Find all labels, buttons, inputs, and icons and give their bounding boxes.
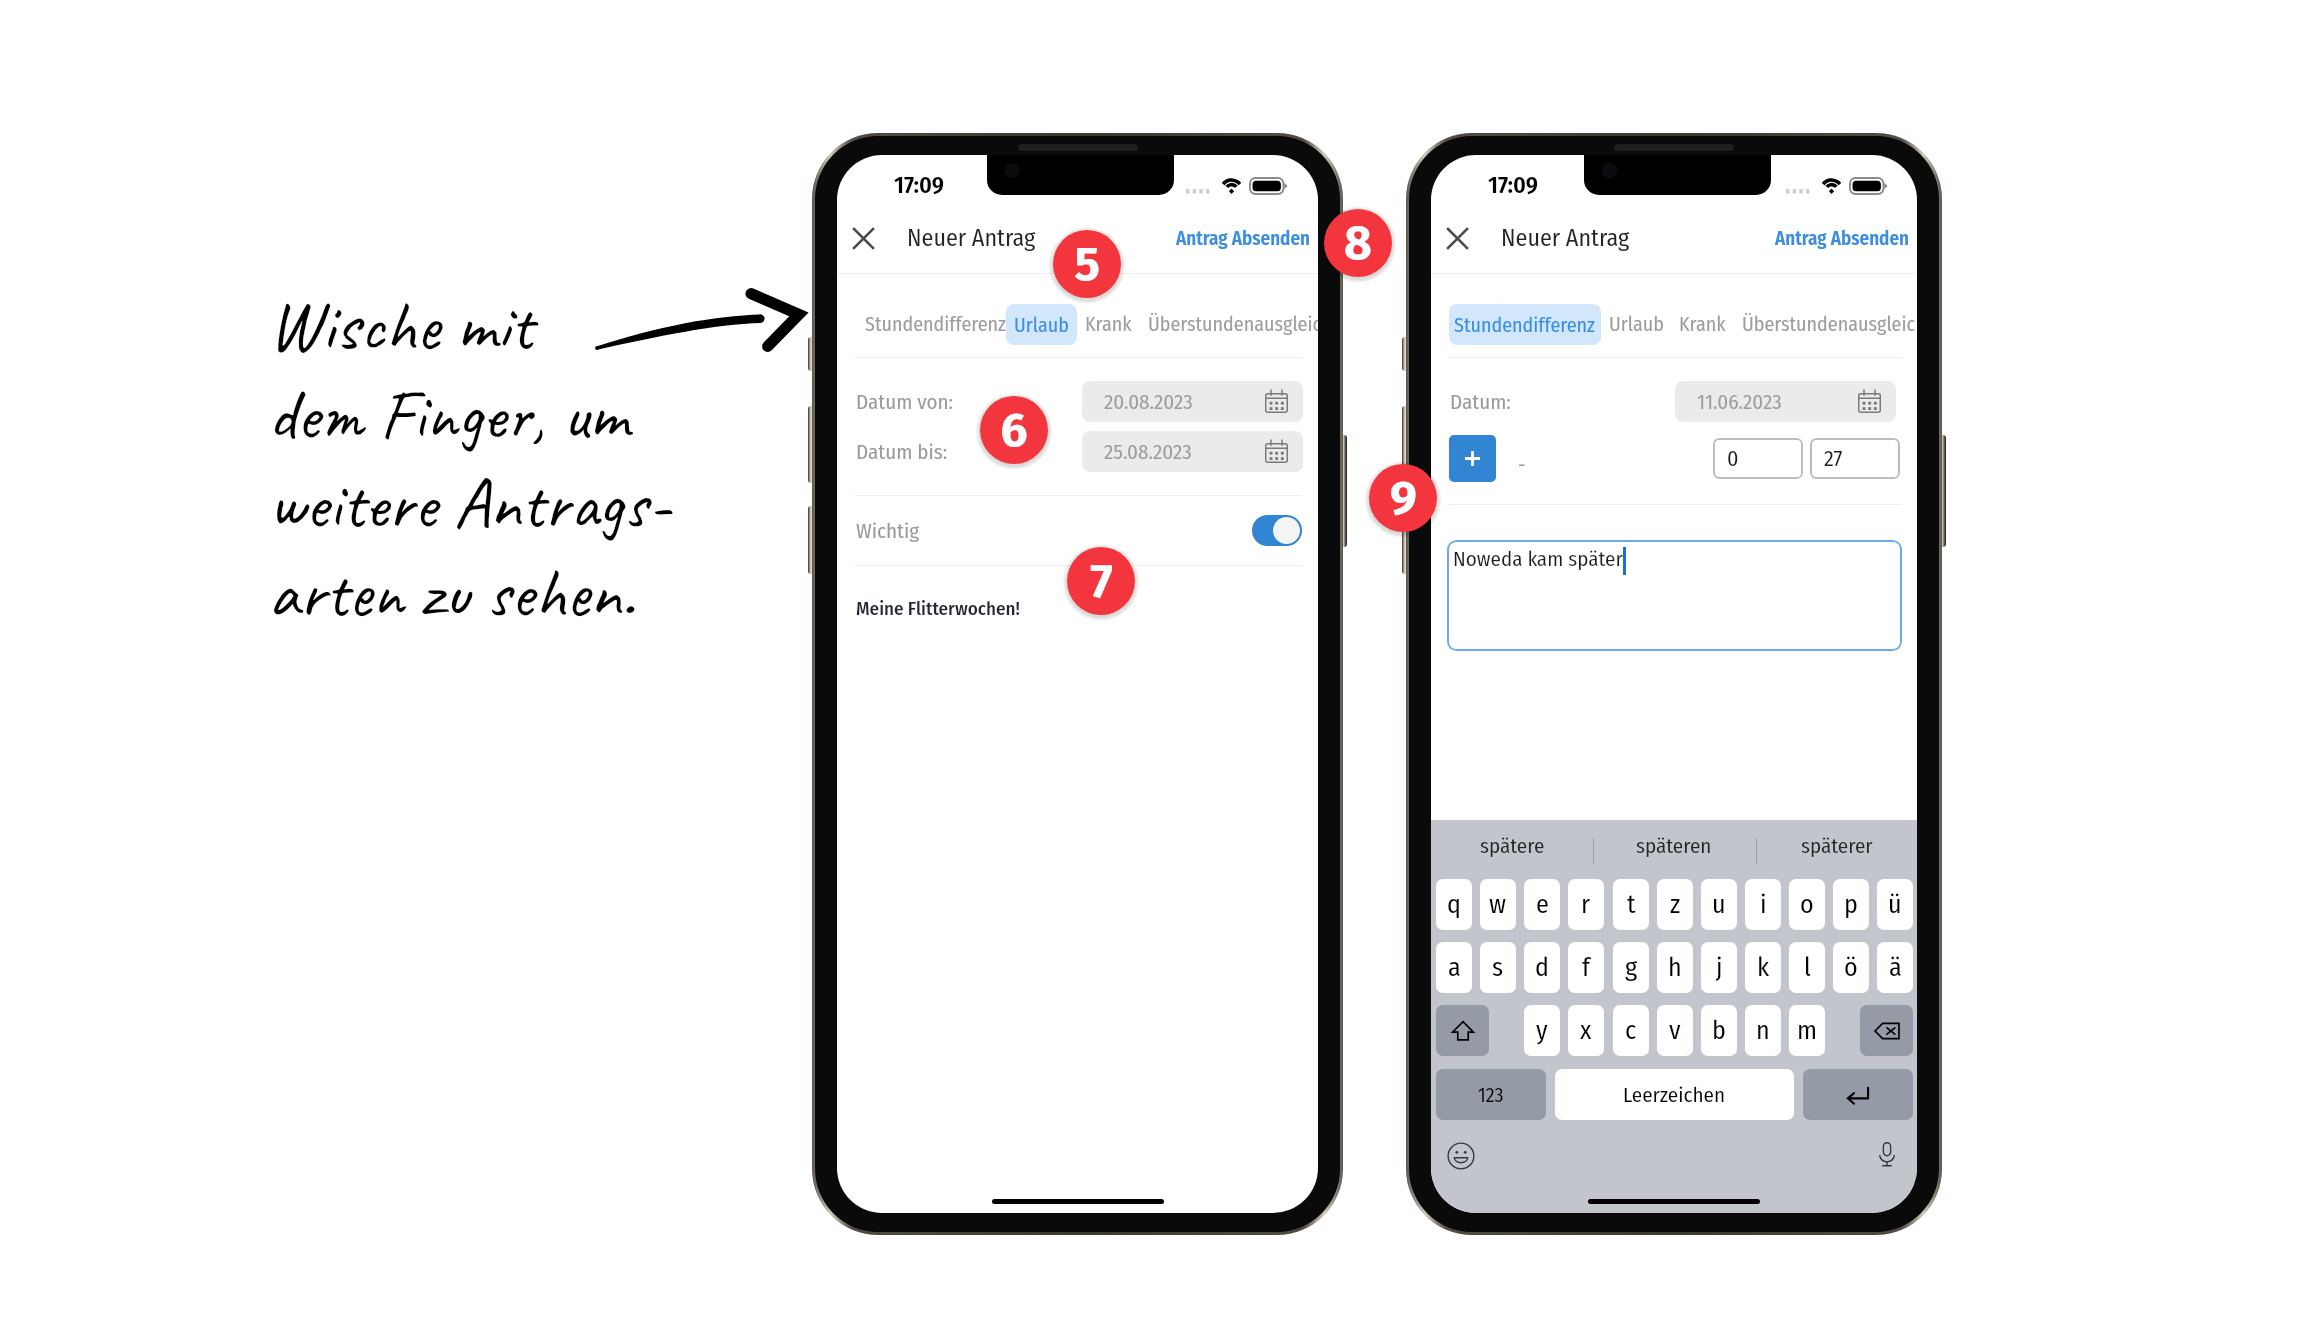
button[interactable]: Schritt 6 (980, 396, 1048, 464)
button[interactable]: y (1524, 1005, 1560, 1056)
button[interactable]: v (1657, 1005, 1693, 1056)
button[interactable]: b (1701, 1005, 1737, 1056)
staticText: 25.08.2023 (1104, 439, 1192, 464)
staticText: x (1580, 1015, 1592, 1046)
button[interactable]: f (1568, 942, 1604, 993)
staticText: Leerzeichen (1623, 1082, 1726, 1107)
button[interactable]: Noweda kam später (1447, 540, 1902, 651)
staticText: o (1800, 889, 1814, 920)
staticText: f (1582, 952, 1590, 983)
button[interactable]: x (1568, 1005, 1604, 1056)
staticText: Wische mit (268, 281, 533, 370)
staticText: Stundendifferenz (865, 312, 1007, 336)
button[interactable]: Löschen (1860, 1005, 1913, 1056)
staticText: Wichtig (856, 518, 920, 543)
button[interactable]: Wichtig umschalten (1252, 515, 1302, 546)
button[interactable]: Urlaub (1609, 301, 1664, 347)
button[interactable]: Stundendifferenz (1449, 304, 1601, 345)
staticText: d (1535, 952, 1549, 983)
staticText: h (1668, 952, 1682, 983)
button[interactable]: Eingabe (1803, 1069, 1913, 1120)
button[interactable]: Urlaub (1006, 304, 1077, 345)
button[interactable]: q (1436, 879, 1472, 930)
button[interactable]: Schließen (837, 211, 890, 265)
button[interactable]: Schritt 7 (1067, 547, 1135, 615)
button[interactable]: i (1745, 879, 1781, 930)
staticText: k (1757, 952, 1770, 983)
staticText: Überstundenausgleic (1148, 312, 1318, 336)
button[interactable]: t (1613, 879, 1649, 930)
button[interactable]: h (1657, 942, 1693, 993)
staticText: Neuer Antrag (907, 224, 1036, 253)
staticText: u (1712, 889, 1726, 920)
button[interactable]: Schritt 5 (1053, 230, 1121, 298)
button[interactable]: Emoji (1447, 1142, 1475, 1170)
staticText: Datum von: (856, 389, 954, 414)
staticText: Datum: (1450, 389, 1511, 414)
button[interactable]: ü (1877, 879, 1913, 930)
button[interactable]: Schließen (1431, 211, 1484, 265)
staticText: Datum bis: (856, 439, 948, 464)
button[interactable]: Hinzufügen (1449, 435, 1496, 482)
staticText: 17:09 (894, 171, 944, 200)
button[interactable]: 25.08.2023 (1082, 431, 1303, 472)
button[interactable]: ö (1833, 942, 1869, 993)
button[interactable]: u (1701, 879, 1737, 930)
staticText: weitere Antrags- (268, 459, 671, 548)
staticText: j (1716, 952, 1723, 983)
button[interactable]: spätere (1431, 820, 1593, 870)
button[interactable]: Krank (1085, 301, 1132, 347)
button[interactable]: j (1701, 942, 1737, 993)
button[interactable]: w (1480, 879, 1516, 930)
button[interactable]: Leerzeichen (1555, 1069, 1794, 1120)
button[interactable]: späteren (1593, 820, 1755, 870)
button[interactable]: 123 (1436, 1069, 1546, 1120)
button[interactable]: d (1524, 942, 1560, 993)
staticText: i (1760, 889, 1767, 920)
button[interactable]: 0 (1713, 438, 1803, 479)
button[interactable]: a (1436, 942, 1472, 993)
button[interactable]: c (1613, 1005, 1649, 1056)
button[interactable]: p (1833, 879, 1869, 930)
staticText: Antrag Absenden (1775, 227, 1909, 250)
button[interactable]: r (1568, 879, 1604, 930)
button[interactable]: Schritt 9 (1369, 464, 1437, 532)
staticText: 11.06.2023 (1697, 389, 1782, 414)
button[interactable]: l (1789, 942, 1825, 993)
staticText: 17:09 (1488, 171, 1538, 200)
button[interactable]: e (1524, 879, 1560, 930)
staticText: z (1670, 889, 1681, 920)
button[interactable]: 27 (1810, 438, 1900, 479)
staticText: 27 (1824, 445, 1843, 471)
staticText: v (1669, 1015, 1681, 1046)
button[interactable]: n (1745, 1005, 1781, 1056)
staticText: p (1844, 889, 1858, 920)
button[interactable]: s (1480, 942, 1516, 993)
staticText: 7 (1090, 552, 1113, 610)
button[interactable]: g (1613, 942, 1649, 993)
button[interactable]: Schritt 8 (1324, 209, 1392, 277)
button[interactable]: Krank (1679, 301, 1726, 347)
button[interactable]: 20.08.2023 (1082, 381, 1303, 422)
button[interactable]: z (1657, 879, 1693, 930)
button[interactable]: Überstundenausgleic (1148, 301, 1318, 347)
button[interactable]: Überstundenausgleic (1742, 301, 1916, 347)
staticText: 123 (1478, 1083, 1504, 1107)
button[interactable]: Antrag Absenden (1171, 222, 1315, 255)
button[interactable]: Diktieren (1873, 1140, 1901, 1168)
staticText: y (1536, 1015, 1548, 1046)
staticText: arten zu sehen. (268, 548, 635, 637)
staticText: Stundendifferenz (1454, 313, 1596, 337)
staticText: s (1492, 952, 1504, 983)
button[interactable]: m (1789, 1005, 1825, 1056)
button[interactable]: k (1745, 942, 1781, 993)
button[interactable]: ä (1877, 942, 1913, 993)
button[interactable]: Stundendifferenz (865, 301, 1007, 347)
staticText: ö (1844, 952, 1858, 983)
staticText: 0 (1727, 445, 1739, 471)
button[interactable]: Antrag Absenden (1770, 222, 1914, 255)
button[interactable]: Umschalt (1436, 1005, 1489, 1056)
button[interactable]: späterer (1756, 820, 1917, 870)
button[interactable]: 11.06.2023 (1675, 381, 1896, 422)
button[interactable]: o (1789, 879, 1825, 930)
